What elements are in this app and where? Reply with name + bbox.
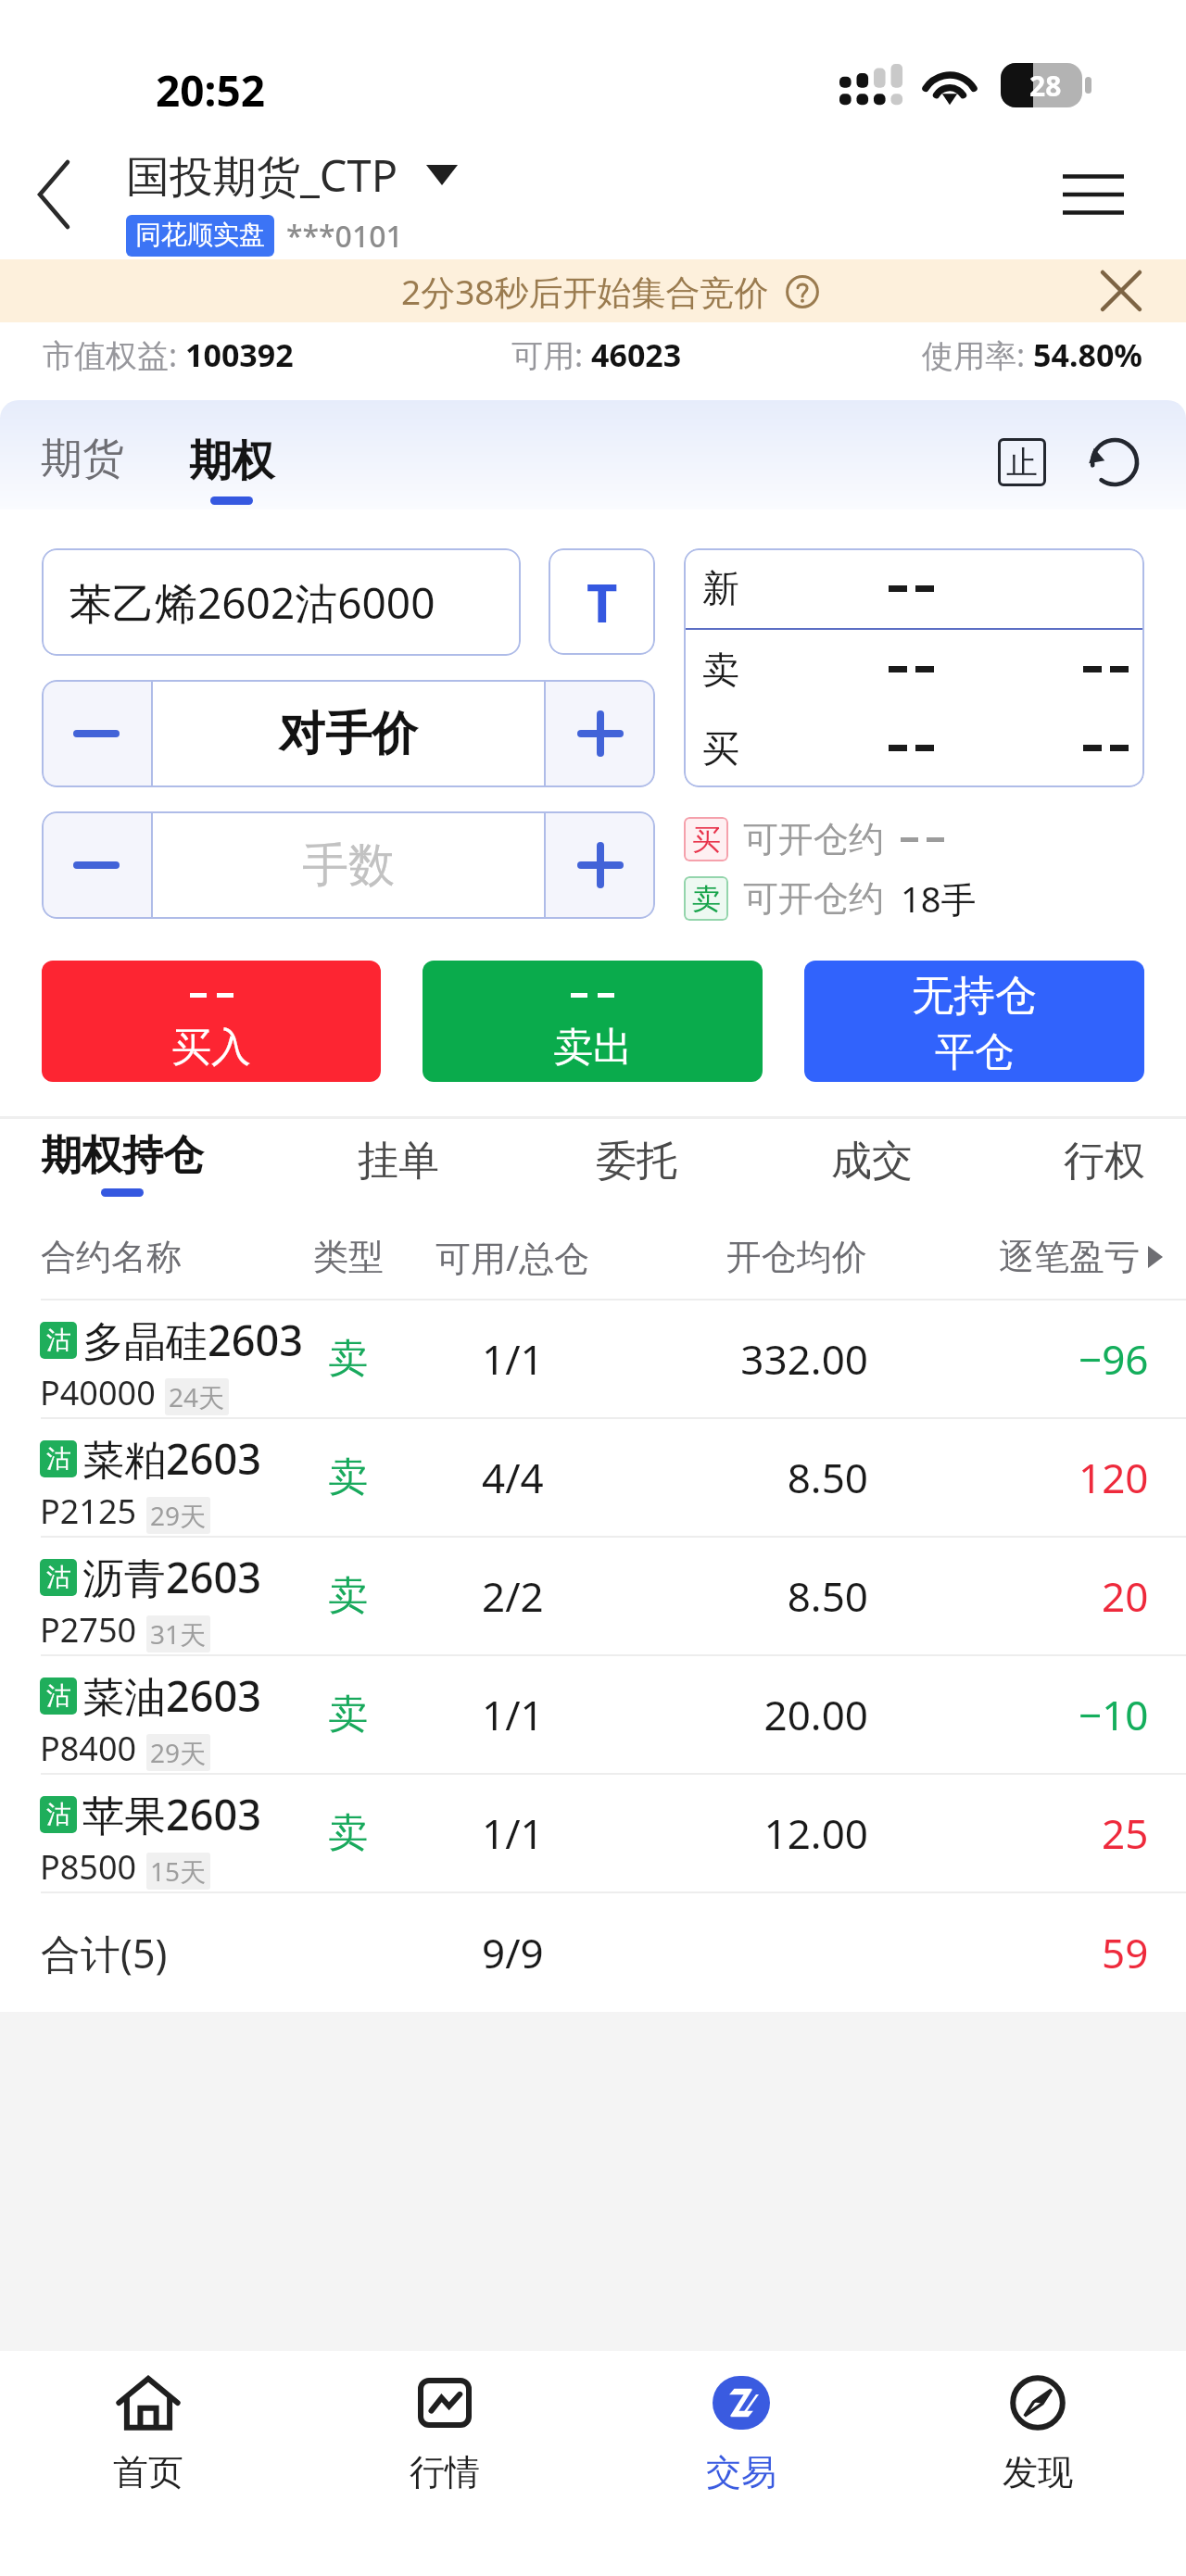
staticText: 120 [1079, 1450, 1149, 1505]
staticText: 国投期货_CTP [126, 145, 398, 205]
staticText: 首页 [113, 2450, 183, 2494]
staticText: 期货 [41, 433, 124, 485]
staticText: 卖出 [553, 1023, 633, 1073]
button[interactable]: 期货 [24, 400, 141, 509]
staticText: 合计(5) [41, 1926, 168, 1980]
staticText: P2750 [40, 1607, 137, 1652]
staticText: 菜油2603 [82, 1667, 261, 1724]
staticText: 100392 [185, 333, 294, 376]
staticText: 卖 [702, 647, 739, 693]
button[interactable]: 无持仓 [804, 961, 1144, 1082]
staticText: 行权 [1064, 1136, 1145, 1187]
button[interactable]: 沽 [0, 1775, 1186, 1891]
staticText: P40000 [40, 1370, 156, 1415]
staticText: 交易 [706, 2450, 776, 2494]
staticText: 18手 [901, 874, 977, 923]
staticText: 卖 [328, 1334, 368, 1384]
staticText: 可用/总仓 [435, 1233, 590, 1281]
staticText: 类型 [313, 1235, 384, 1279]
button[interactable]: 沽 [0, 1301, 1186, 1417]
staticText: 沽 [46, 1443, 71, 1475]
staticText: 59 [1102, 1925, 1149, 1980]
button[interactable]: 行情 [296, 2351, 593, 2576]
staticText: 9/9 [482, 1925, 544, 1980]
staticText: T [587, 565, 618, 638]
button[interactable]: 发现 [889, 2351, 1186, 2576]
button[interactable]: 成交 [816, 1119, 927, 1215]
button[interactable]: Close [1091, 261, 1151, 320]
staticText: 菜粕2603 [82, 1430, 261, 1487]
staticText: 24天 [169, 1379, 225, 1414]
staticText: P8500 [40, 1844, 137, 1890]
staticText: 沽 [46, 1325, 71, 1356]
button[interactable]: Decrease [42, 811, 151, 919]
button[interactable]: Decrease [42, 680, 151, 787]
staticText: 买入 [171, 1023, 251, 1073]
staticText: ***0101 [286, 216, 403, 257]
staticText: 发现 [1003, 2450, 1073, 2494]
staticText: 市值权益: [43, 333, 185, 376]
staticText: 1/1 [482, 1687, 544, 1742]
staticText: 逐笔盈亏 [999, 1235, 1140, 1279]
staticText: 止 [1006, 443, 1038, 483]
staticText: 手数 [302, 836, 395, 895]
staticText: 可用: [511, 333, 591, 376]
staticText: 多晶硅2603 [82, 1312, 303, 1368]
button[interactable]: 买入 [42, 961, 381, 1082]
staticText: 12.00 [0, 1805, 868, 1861]
button[interactable]: Increase [546, 811, 655, 919]
staticText: −10 [1079, 1687, 1149, 1742]
button[interactable]: 首页 [0, 2351, 296, 2576]
staticText: 开仓均价 [726, 1235, 867, 1279]
button[interactable]: 沽 [0, 1419, 1186, 1536]
button[interactable]: 沽 [0, 1538, 1186, 1654]
staticText: 25 [1102, 1805, 1149, 1861]
staticText: 46023 [591, 333, 682, 376]
staticText: 20 [1102, 1568, 1149, 1624]
staticText: 无持仓 [912, 970, 1037, 1023]
button[interactable]: 手数 [153, 811, 544, 919]
staticText: 28 [1029, 67, 1062, 105]
staticText: 可开仓约 [743, 817, 884, 861]
button[interactable]: Menu [1049, 150, 1138, 239]
staticText: 苯乙烯2602沽6000 [69, 573, 435, 632]
staticText: 买 [702, 725, 739, 772]
button[interactable]: Stop order [990, 430, 1054, 495]
staticText: 使用率: [922, 333, 1033, 376]
staticText: 20.00 [0, 1687, 868, 1742]
button[interactable]: Refresh [1082, 430, 1147, 495]
staticText: 卖 [328, 1690, 368, 1740]
button[interactable]: 期权持仓 [41, 1130, 204, 1197]
staticText: 29天 [150, 1498, 207, 1533]
staticText: 29天 [150, 1735, 207, 1770]
staticText: P8400 [40, 1726, 137, 1771]
staticText: P2125 [40, 1489, 137, 1534]
staticText: 苹果2603 [82, 1786, 261, 1842]
button[interactable]: 沽 [0, 1656, 1186, 1773]
staticText: 买 [692, 822, 721, 858]
button[interactable]: 行权 [1049, 1119, 1160, 1215]
button[interactable]: 委托 [581, 1119, 692, 1215]
button[interactable]: 期权 [172, 400, 291, 509]
button[interactable]: Keyboard [549, 548, 655, 655]
staticText: 卖 [328, 1452, 368, 1502]
staticText: 8.50 [0, 1450, 868, 1505]
staticText: 2/2 [482, 1568, 544, 1624]
staticText: 同花顺实盘 [135, 219, 265, 251]
button[interactable]: 市值权益: [0, 322, 1186, 400]
button[interactable]: 卖出 [423, 961, 763, 1082]
button[interactable]: 苯乙烯2602沽6000 [42, 548, 521, 656]
staticText: 挂单 [358, 1136, 439, 1187]
staticText: 31天 [150, 1616, 207, 1652]
button[interactable]: Increase [546, 680, 655, 787]
button[interactable]: Back [0, 143, 104, 246]
button[interactable]: 交易 [593, 2351, 889, 2576]
staticText: 沽 [46, 1799, 71, 1830]
button[interactable]: 挂单 [343, 1119, 454, 1215]
staticText: 期权持仓 [41, 1130, 204, 1181]
staticText: 委托 [596, 1136, 677, 1187]
staticText: 54.80% [1033, 333, 1143, 376]
button[interactable]: 国投期货_CTP [126, 145, 458, 205]
button[interactable]: 对手价 [153, 680, 544, 787]
staticText: 平仓 [935, 1027, 1015, 1077]
